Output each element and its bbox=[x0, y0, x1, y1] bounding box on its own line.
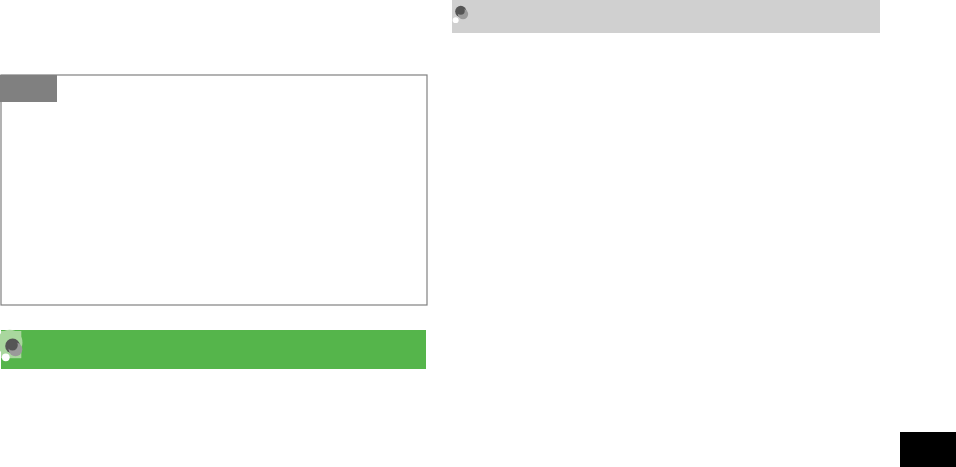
button[interactable]: Status indicator bbox=[452, 0, 474, 26]
button[interactable] bbox=[1, 330, 426, 369]
button[interactable]: Progress indicator bbox=[1, 331, 30, 365]
button[interactable] bbox=[452, 0, 880, 33]
button[interactable] bbox=[1, 75, 427, 305]
